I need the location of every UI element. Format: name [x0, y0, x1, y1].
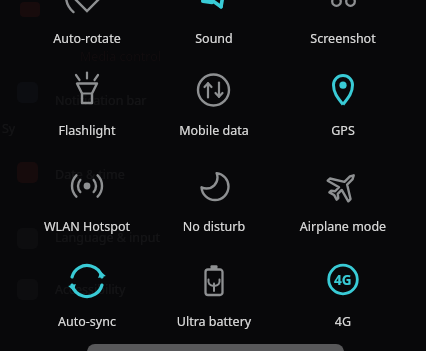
staticText: No disturb [150, 218, 278, 235]
staticText: Date & time [55, 166, 125, 183]
staticText: Sound [150, 30, 278, 47]
staticText: 4G [334, 271, 352, 289]
button[interactable]: Auto-rotate [23, 0, 151, 47]
button[interactable]: No disturb [150, 163, 278, 235]
button[interactable]: WLAN Hotspot [23, 163, 151, 235]
button[interactable]: Sound [150, 0, 278, 47]
button[interactable]: Airplane mode [279, 163, 407, 235]
button[interactable]: Mobile data [150, 67, 278, 139]
staticText: Language & input [55, 229, 160, 246]
staticText: Airplane mode [279, 218, 407, 235]
button[interactable]: Auto-sync [23, 258, 151, 330]
button[interactable]: 4G [279, 258, 407, 330]
button[interactable] [87, 344, 344, 351]
button[interactable]: Ultra battery [150, 258, 278, 330]
button[interactable]: GPS [279, 67, 407, 139]
staticText: Mobile data [150, 122, 278, 139]
staticText: Accessibility [55, 281, 126, 298]
staticText: GPS [279, 122, 407, 139]
staticText: Sy [2, 120, 16, 137]
staticText: Screenshot [279, 30, 407, 47]
button[interactable]: Screenshot [279, 0, 407, 47]
button[interactable]: Flashlight [23, 67, 151, 139]
staticText: Ultra battery [150, 313, 278, 330]
staticText: 4G [279, 313, 407, 330]
staticText: Auto-sync [23, 313, 151, 330]
staticText: WLAN Hotspot [23, 218, 151, 235]
staticText: Flashlight [23, 122, 151, 139]
staticText: Auto-rotate [23, 30, 151, 47]
staticText: Notification bar [55, 92, 147, 109]
